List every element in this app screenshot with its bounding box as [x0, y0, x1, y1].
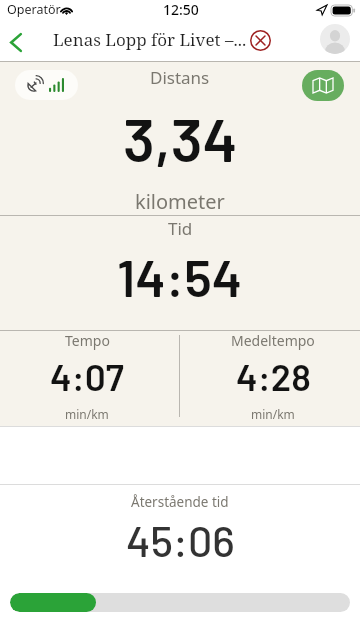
button[interactable]: Back [1, 27, 31, 57]
button[interactable]: GPS signal [15, 70, 78, 100]
staticText: Medeltempo [231, 331, 315, 350]
staticText: 12:50 [163, 0, 199, 19]
button[interactable]: Medeltempo [186, 331, 360, 425]
staticText: 3,34 [123, 102, 238, 174]
staticText: 45:06 [126, 514, 235, 566]
staticText: Operatör [7, 1, 61, 18]
staticText: Tempo [65, 331, 110, 350]
button[interactable]: Tempo [0, 331, 174, 425]
staticText: 4:07 [50, 354, 124, 398]
staticText: Återstående tid [131, 493, 229, 511]
staticText: Tid [168, 217, 193, 240]
staticText: Distans [150, 66, 210, 89]
staticText: min/km [65, 406, 109, 422]
button[interactable]: Profile [320, 24, 350, 54]
button[interactable]: Progress [10, 593, 350, 612]
staticText: kilometer [135, 188, 225, 215]
button[interactable]: Close [248, 28, 273, 53]
button[interactable]: Map [302, 70, 344, 101]
staticText: 4:28 [236, 354, 311, 398]
staticText: Lenas Lopp för Livet –... [53, 28, 247, 51]
staticText: min/km [251, 406, 295, 422]
staticText: 14:54 [117, 245, 243, 307]
